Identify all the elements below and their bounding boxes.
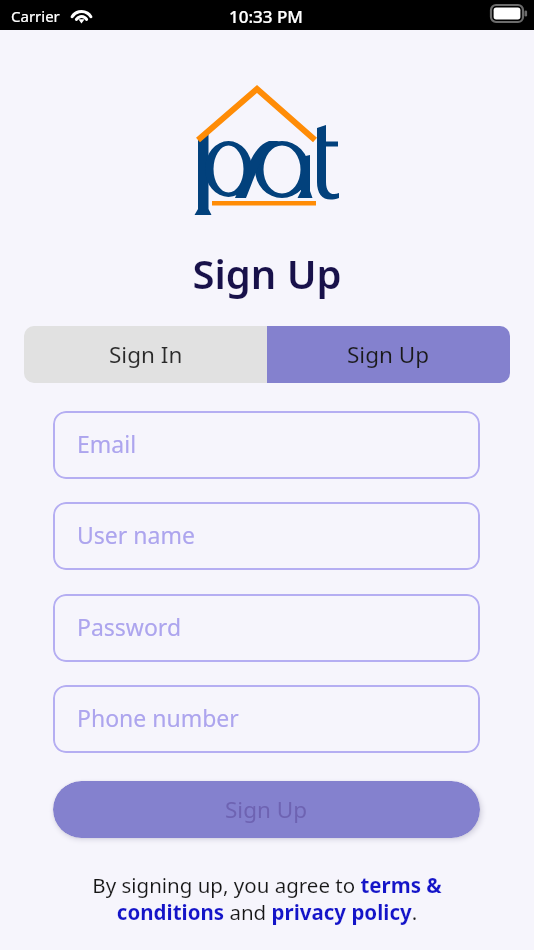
staticText: Sign Up (347, 339, 430, 370)
button[interactable]: Email (53, 411, 480, 479)
staticText: Carrier (11, 6, 60, 26)
button[interactable]: Sign Up (267, 326, 510, 383)
button[interactable]: Password (53, 594, 480, 662)
button[interactable]: Sign In (24, 326, 267, 383)
staticText: Email (77, 428, 137, 459)
button[interactable]: By signing up, you agree to terms & cond… (48, 871, 486, 926)
staticText: 10:33 PM (229, 5, 303, 28)
button[interactable]: Phone number (53, 685, 480, 753)
staticText: Sign Up (0, 246, 534, 300)
button[interactable]: Sign Up (53, 781, 480, 838)
staticText: User name (77, 519, 195, 550)
staticText: Phone number (77, 702, 239, 733)
staticText: Sign In (109, 339, 183, 370)
button[interactable]: User name (53, 502, 480, 570)
staticText: Password (77, 611, 182, 642)
staticText: Sign Up (225, 794, 308, 825)
